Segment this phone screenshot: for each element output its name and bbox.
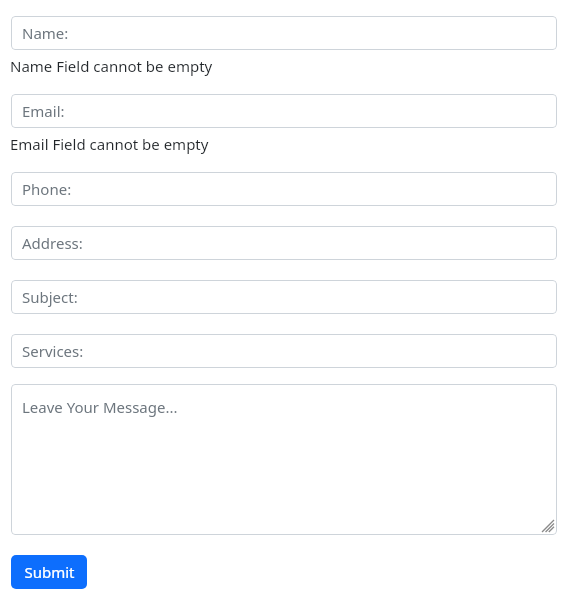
staticText: Name: [22, 23, 69, 43]
staticText: Submit [24, 562, 75, 582]
button[interactable]: Email: [11, 94, 557, 128]
staticText: Phone: [22, 179, 72, 199]
button[interactable]: Phone: [11, 172, 557, 206]
staticText: Name Field cannot be empty [10, 56, 213, 76]
staticText: Services: [22, 341, 84, 361]
button[interactable]: Address: [11, 226, 557, 260]
staticText: Leave Your Message... [22, 397, 178, 417]
staticText: Subject: [22, 287, 78, 307]
button[interactable]: Submit [11, 555, 87, 589]
button[interactable]: Leave Your Message... [11, 384, 557, 535]
button[interactable]: Subject: [11, 280, 557, 314]
staticText: Address: [22, 233, 83, 253]
button[interactable]: Name: [11, 16, 557, 50]
staticText: Email Field cannot be empty [10, 134, 209, 154]
button[interactable]: Services: [11, 334, 557, 368]
staticText: Email: [22, 101, 65, 121]
